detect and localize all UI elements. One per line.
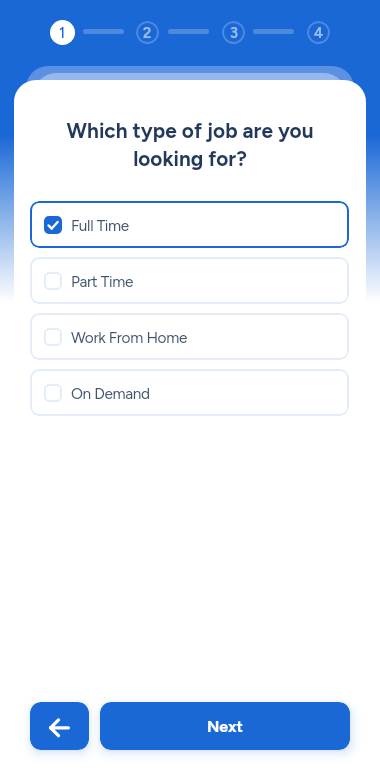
button[interactable]: 2 bbox=[136, 21, 159, 44]
button[interactable]: Part Time bbox=[30, 257, 349, 304]
staticText: On Demand bbox=[71, 384, 150, 402]
staticText: Full Time bbox=[71, 216, 129, 234]
staticText: Work From Home bbox=[71, 328, 187, 346]
button[interactable]: Work From Home bbox=[30, 313, 349, 360]
staticText: Part Time bbox=[71, 272, 133, 290]
staticText: 3 bbox=[230, 24, 238, 41]
button[interactable]: Back bbox=[30, 702, 89, 750]
staticText: Next bbox=[207, 717, 243, 736]
staticText: Which type of job are you looking for? bbox=[45, 118, 335, 172]
staticText: 2 bbox=[143, 24, 152, 41]
button[interactable]: Next bbox=[100, 702, 350, 750]
staticText: 1 bbox=[59, 24, 66, 41]
button[interactable]: On Demand bbox=[30, 369, 349, 416]
button[interactable]: 1 bbox=[50, 20, 75, 45]
button[interactable]: 4 bbox=[307, 21, 330, 44]
button[interactable]: 3 bbox=[222, 21, 245, 44]
button[interactable]: Full Time bbox=[30, 201, 349, 248]
staticText: 4 bbox=[314, 24, 324, 41]
